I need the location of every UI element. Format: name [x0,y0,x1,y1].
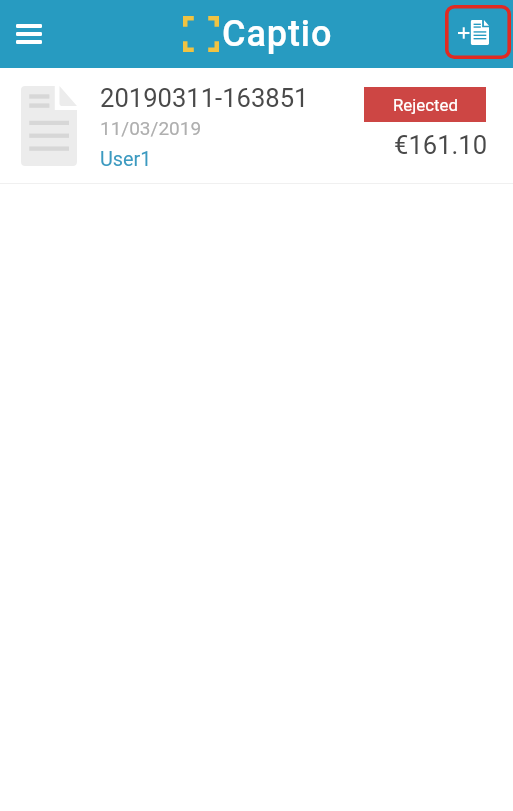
staticText: Rejected [393,95,458,115]
button[interactable]: 20190311-163851 [0,68,513,184]
staticText: €161.10 [394,130,488,160]
staticText: Captio [222,13,333,55]
button[interactable]: Open navigation menu [3,8,55,60]
staticText: 20190311-163851 [100,83,309,113]
staticText: 11/03/2019 [100,117,202,139]
staticText: User1 [100,148,152,171]
button[interactable]: New expense report [445,5,511,59]
